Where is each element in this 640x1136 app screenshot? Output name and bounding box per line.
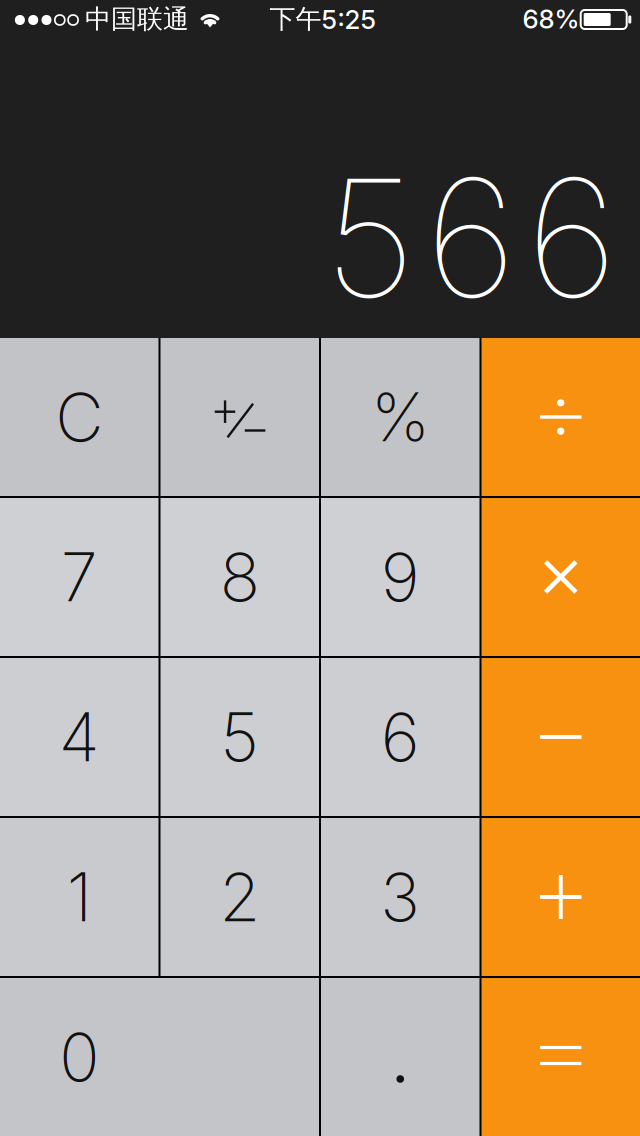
staticText: 中国联通 bbox=[85, 3, 189, 35]
button[interactable]: 5 bbox=[160, 658, 319, 816]
button[interactable]: 0 bbox=[0, 978, 319, 1136]
button[interactable]: 4 bbox=[0, 658, 158, 816]
staticText: 2 bbox=[219, 857, 260, 937]
staticText: 8 bbox=[220, 537, 260, 617]
staticText: 1 bbox=[67, 857, 92, 937]
button[interactable]: 2 bbox=[160, 818, 319, 976]
button[interactable]: C bbox=[0, 338, 158, 496]
staticText: 下午5:25 bbox=[269, 3, 376, 35]
button[interactable]: Decimal point bbox=[321, 978, 479, 1136]
button[interactable]: 3 bbox=[321, 818, 479, 976]
button[interactable]: 9 bbox=[321, 498, 479, 656]
staticText: 5 bbox=[324, 139, 416, 336]
button[interactable]: 6 bbox=[321, 658, 479, 816]
staticText: 4 bbox=[59, 697, 100, 777]
staticText: 9 bbox=[381, 537, 420, 617]
button[interactable]: Divide bbox=[481, 338, 640, 496]
staticText: 5 bbox=[220, 697, 259, 777]
staticText: 68% bbox=[522, 3, 579, 35]
staticText: 6 bbox=[526, 139, 618, 336]
staticText: C bbox=[55, 377, 103, 457]
staticText: % bbox=[371, 377, 430, 457]
button[interactable]: Subtract bbox=[481, 658, 640, 816]
button[interactable]: Multiply bbox=[481, 498, 640, 656]
button[interactable]: Add bbox=[481, 818, 640, 976]
button[interactable]: 7 bbox=[0, 498, 158, 656]
staticText: 7 bbox=[61, 537, 98, 617]
staticText: 3 bbox=[380, 857, 420, 937]
button[interactable]: 1 bbox=[0, 818, 158, 976]
button[interactable]: 8 bbox=[160, 498, 319, 656]
staticText: 6 bbox=[381, 697, 420, 777]
button[interactable]: Plus minus bbox=[160, 338, 319, 496]
staticText: 0 bbox=[59, 1017, 99, 1097]
staticText: 6 bbox=[425, 139, 517, 336]
button[interactable]: Equals bbox=[481, 978, 640, 1136]
button[interactable]: % bbox=[321, 338, 479, 496]
